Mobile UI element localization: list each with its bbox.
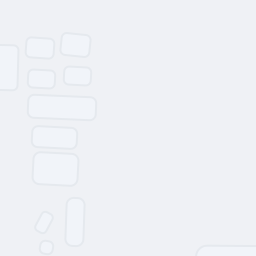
button[interactable]: Small tilted tile: [38, 212, 50, 233]
button[interactable]: Large tile: [33, 153, 78, 185]
button[interactable]: Tile 1: [0, 45, 18, 90]
button[interactable]: Medium bar: [32, 127, 77, 148]
button[interactable]: Small tile: [40, 241, 53, 254]
button[interactable]: Tile 4: [28, 70, 55, 88]
button[interactable]: Wide bar: [28, 96, 96, 119]
button[interactable]: Tile 3: [61, 34, 90, 56]
button[interactable]: Tile 5: [64, 67, 91, 85]
button[interactable]: Tile 2: [26, 38, 54, 58]
button[interactable]: Card: [196, 246, 256, 256]
button[interactable]: Tall pill: [66, 198, 84, 246]
